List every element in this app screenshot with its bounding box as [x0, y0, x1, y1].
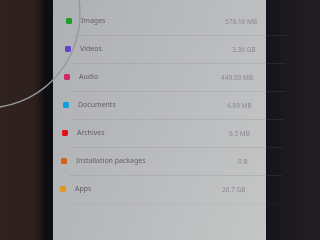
staticText: 3.36 GB — [232, 45, 256, 54]
staticText: Apps — [75, 184, 92, 194]
button[interactable]: Audio — [51, 63, 264, 91]
staticText: 576.16 MB — [225, 17, 258, 26]
staticText: 449.03 MB — [221, 73, 254, 82]
button[interactable]: Videos — [52, 35, 265, 63]
staticText: 26.7 GB — [222, 185, 246, 194]
staticText: Archives — [77, 128, 105, 138]
button[interactable]: Apps — [47, 175, 260, 203]
staticText: 0 B — [238, 157, 248, 166]
button[interactable]: Archives — [49, 119, 262, 147]
staticText: Documents — [78, 100, 116, 110]
button[interactable]: Documents — [50, 91, 263, 119]
button[interactable]: Images — [53, 7, 266, 35]
staticText: 35.6 GB — [68, 0, 101, 2]
staticText: 4.89 MB — [227, 101, 252, 110]
staticText: Audio — [79, 72, 99, 82]
staticText: Images — [81, 16, 106, 26]
button[interactable]: Installation packages — [48, 147, 261, 175]
staticText: Videos — [80, 44, 102, 54]
staticText: 6.5 MB — [229, 129, 250, 138]
staticText: Installation packages — [76, 156, 146, 166]
